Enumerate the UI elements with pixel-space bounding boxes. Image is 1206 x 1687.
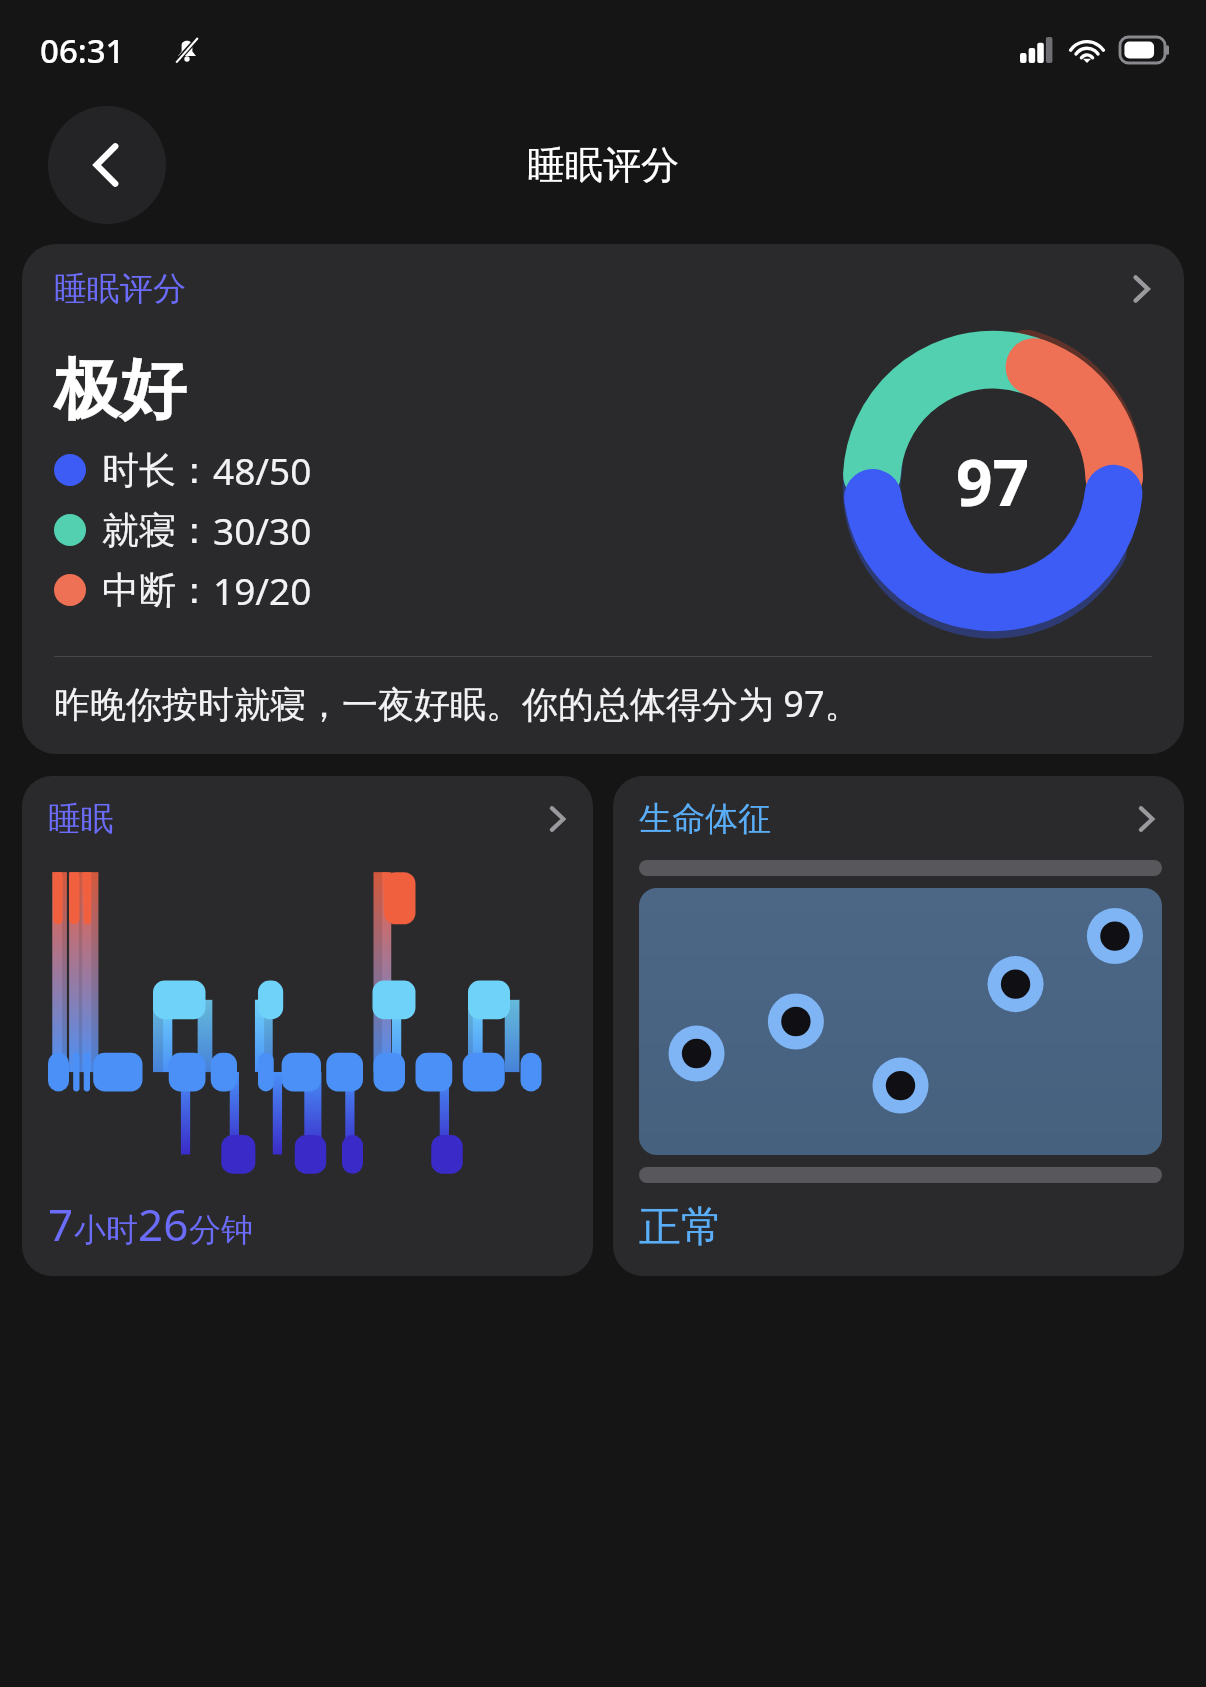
staticText: 06:31 bbox=[40, 28, 125, 73]
button[interactable]: 生命体征 bbox=[613, 776, 1184, 1276]
staticText: 极好 bbox=[54, 348, 186, 431]
staticText: 中断： bbox=[102, 567, 213, 614]
button[interactable]: 睡眠 bbox=[22, 776, 593, 1276]
staticText: 26 bbox=[138, 1194, 189, 1254]
staticText: 睡眠评分 bbox=[54, 268, 186, 310]
button[interactable]: Back bbox=[48, 106, 166, 224]
staticText: 昨晚你按时就寝，一夜好眠。你的总体得分为 97。 bbox=[54, 679, 861, 728]
staticText: 97 bbox=[956, 438, 1030, 525]
staticText: 小时 bbox=[74, 1210, 138, 1250]
staticText: 48/50 bbox=[213, 445, 312, 495]
staticText: 7 bbox=[48, 1194, 74, 1254]
staticText: 生命体征 bbox=[639, 798, 771, 840]
button[interactable]: 睡眠评分 bbox=[22, 244, 1184, 754]
staticText: 睡眠 bbox=[48, 798, 114, 840]
staticText: 睡眠评分 bbox=[527, 141, 679, 189]
staticText: 时长： bbox=[102, 447, 213, 494]
staticText: 分钟 bbox=[189, 1210, 253, 1250]
staticText: 就寝： bbox=[102, 507, 213, 554]
staticText: 正常 bbox=[639, 1201, 723, 1254]
staticText: 19/20 bbox=[213, 565, 312, 615]
staticText: 30/30 bbox=[213, 505, 312, 555]
